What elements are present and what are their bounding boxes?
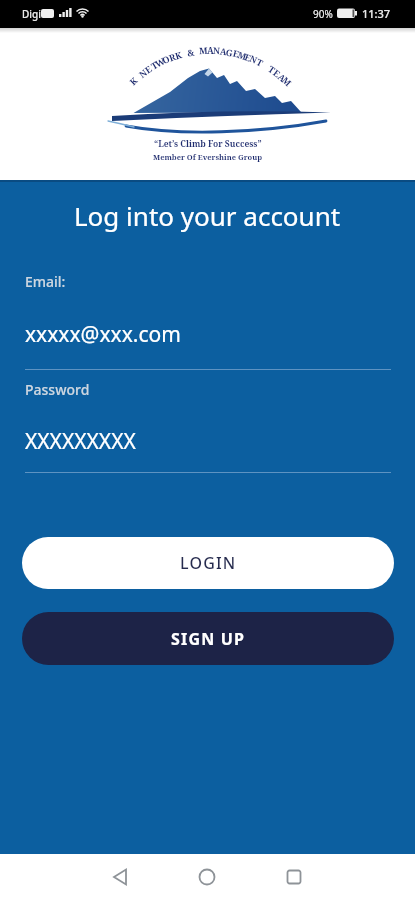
staticText: A — [276, 70, 289, 84]
staticText: A — [207, 44, 214, 56]
staticText: 90% — [313, 7, 333, 21]
button[interactable]: LOGIN — [22, 537, 394, 589]
staticText: K — [127, 74, 140, 87]
staticText: R — [167, 50, 178, 64]
staticText: O — [160, 52, 172, 66]
staticText: M — [199, 44, 208, 56]
staticText: T — [266, 62, 278, 76]
staticText: N — [248, 52, 260, 66]
staticText: Digi — [22, 7, 41, 21]
staticText: T — [148, 58, 160, 72]
staticText: A — [219, 45, 228, 57]
staticText: 11:37 — [362, 6, 391, 21]
staticText: E — [142, 62, 154, 76]
button[interactable]: XXXXXXXXX — [25, 427, 365, 457]
staticText: N — [213, 44, 221, 56]
staticText: M — [236, 48, 248, 62]
staticText: & — [186, 45, 196, 59]
staticText: SIGN UP — [171, 628, 246, 650]
staticText: E — [232, 46, 240, 60]
staticText: Email: — [25, 272, 66, 291]
button[interactable] — [280, 863, 308, 891]
button[interactable] — [193, 863, 221, 891]
staticText: LOGIN — [180, 552, 237, 574]
staticText: M — [280, 74, 295, 89]
button[interactable] — [106, 863, 134, 891]
staticText: E — [271, 66, 283, 80]
staticText: “Let’s Climb For Success” — [154, 138, 262, 150]
staticText: XXXXXXXXX — [25, 427, 136, 456]
button[interactable]: SIGN UP — [22, 612, 394, 665]
staticText: Member Of Evershine Group — [153, 152, 263, 162]
staticText: Log into your account — [74, 198, 341, 233]
staticText: W — [153, 54, 167, 70]
staticText: T — [255, 55, 265, 69]
button[interactable]: xxxxx@xxx.com — [25, 320, 365, 350]
staticText: E — [243, 50, 253, 64]
staticText: K — [173, 48, 184, 62]
staticText: xxxxx@xxx.com — [25, 320, 181, 349]
staticText: G — [225, 46, 234, 59]
staticText: N — [136, 66, 150, 80]
staticText: Password — [25, 380, 90, 399]
